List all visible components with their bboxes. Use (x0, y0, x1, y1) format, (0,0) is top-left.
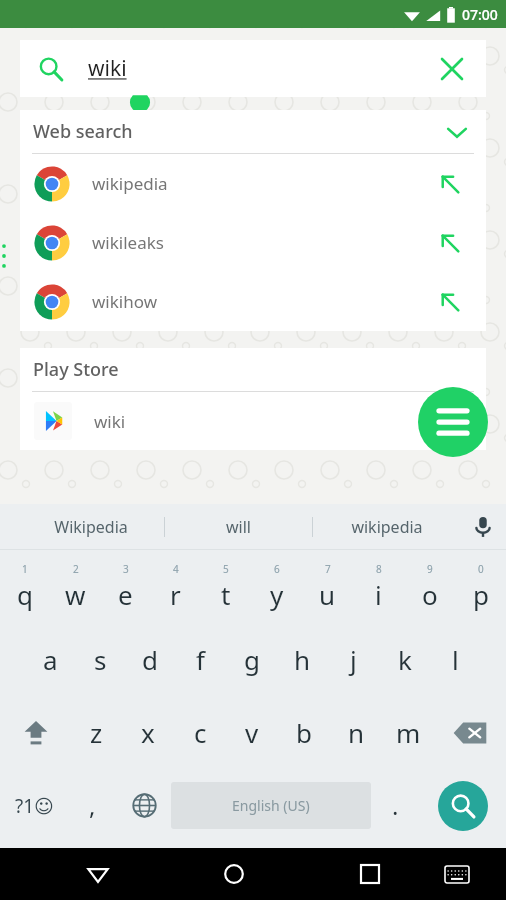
button[interactable]: wikihow (20, 272, 486, 331)
staticText: k (398, 642, 412, 677)
staticText: 3 (123, 562, 129, 576)
button[interactable]: d (125, 623, 175, 696)
button[interactable]: m (382, 696, 434, 769)
staticText: Web search (33, 119, 133, 144)
button[interactable]: v (226, 696, 278, 769)
button[interactable]: 7 (302, 550, 353, 623)
staticText: h (294, 642, 311, 677)
staticText: f (196, 642, 205, 677)
button[interactable]: Switch keyboard (433, 850, 481, 898)
button[interactable]: wikileaks (20, 213, 486, 272)
staticText: v (245, 715, 259, 750)
staticText: wikihow (92, 290, 158, 313)
button[interactable]: Voice input (460, 504, 506, 549)
staticText: , (89, 789, 96, 822)
button[interactable]: Back (74, 850, 122, 898)
staticText: d (142, 642, 158, 677)
staticText: j (350, 642, 357, 677)
staticText: wikileaks (92, 231, 164, 254)
staticText: a (43, 642, 58, 677)
staticText: s (94, 642, 107, 677)
button[interactable]: Home (210, 850, 258, 898)
staticText: ?1☺ (15, 793, 54, 819)
button[interactable]: Backspace (434, 696, 506, 769)
button[interactable]: Shift (0, 696, 71, 769)
staticText: u (319, 577, 336, 612)
button[interactable]: 3 (100, 550, 150, 623)
button[interactable]: Search (438, 781, 488, 831)
button[interactable]: Wikipedia (18, 504, 164, 549)
button[interactable]: a (25, 623, 75, 696)
staticText: b (296, 715, 312, 750)
button[interactable]: 0 (455, 550, 506, 623)
button[interactable]: z (71, 696, 122, 769)
button[interactable]: c (174, 696, 226, 769)
button[interactable]: wiki (20, 40, 486, 97)
button[interactable]: j (328, 623, 379, 696)
button[interactable]: will (165, 504, 312, 549)
staticText: 7 (325, 562, 331, 576)
staticText: g (244, 642, 260, 677)
staticText: 5 (223, 562, 229, 576)
staticText: y (270, 577, 284, 612)
staticText: 6 (274, 562, 280, 576)
button[interactable]: Menu (418, 387, 488, 457)
staticText: wikipedia (92, 172, 168, 195)
button[interactable]: 8 (353, 550, 404, 623)
button[interactable]: 1 (0, 550, 50, 623)
button[interactable]: Insert wikipedia (428, 162, 472, 206)
button[interactable]: n (330, 696, 382, 769)
button[interactable]: 9 (404, 550, 455, 623)
button[interactable]: 2 (50, 550, 100, 623)
button[interactable]: Web search (20, 110, 486, 153)
staticText: r (170, 577, 181, 612)
staticText: x (141, 715, 155, 750)
staticText: o (422, 577, 438, 612)
staticText: 1 (22, 562, 28, 576)
staticText: Wikipedia (54, 516, 128, 538)
button[interactable]: Change language (117, 769, 171, 842)
staticText: 2 (73, 562, 79, 576)
button[interactable]: g (226, 623, 277, 696)
staticText: m (396, 715, 421, 750)
button[interactable]: b (278, 696, 330, 769)
staticText: 4 (173, 562, 179, 576)
staticText: . (392, 789, 399, 822)
button[interactable]: English (US) (171, 782, 371, 829)
button[interactable]: Play Store (20, 348, 486, 391)
button[interactable]: x (122, 696, 174, 769)
button[interactable]: f (175, 623, 226, 696)
button[interactable]: l (430, 623, 481, 696)
button[interactable]: 4 (150, 550, 200, 623)
button[interactable]: Insert wikileaks (428, 221, 472, 265)
button[interactable]: wikipedia (313, 504, 460, 549)
button[interactable]: h (277, 623, 328, 696)
button[interactable]: Recent apps (346, 850, 394, 898)
staticText: 0 (478, 562, 484, 576)
button[interactable]: k (379, 623, 430, 696)
staticText: c (194, 715, 207, 750)
button[interactable]: Insert wikihow (428, 280, 472, 324)
staticText: l (452, 642, 459, 677)
button[interactable]: , (68, 769, 117, 842)
button[interactable]: wikipedia (20, 154, 486, 213)
staticText: e (118, 577, 133, 612)
staticText: q (17, 577, 33, 612)
staticText: 8 (376, 562, 382, 576)
staticText: p (473, 577, 489, 612)
button[interactable]: s (75, 623, 125, 696)
staticText: will (226, 516, 251, 538)
staticText: Play Store (33, 357, 119, 382)
button[interactable]: Clear (430, 47, 474, 91)
button[interactable]: wiki (20, 392, 486, 450)
button[interactable]: ?1☺ (0, 769, 68, 842)
staticText: n (348, 715, 365, 750)
staticText: 9 (427, 562, 433, 576)
button[interactable]: 6 (251, 550, 302, 623)
staticText: t (221, 577, 231, 612)
staticText: wikipedia (351, 516, 423, 538)
staticText: wiki (94, 410, 126, 433)
button[interactable]: . (371, 769, 420, 842)
staticText: 07:00 (462, 5, 498, 24)
button[interactable]: 5 (200, 550, 251, 623)
